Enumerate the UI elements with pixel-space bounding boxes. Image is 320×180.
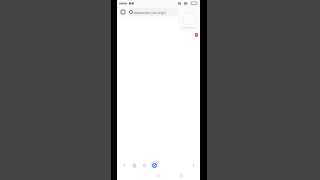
button[interactable]: Bookmark xyxy=(140,161,148,169)
button[interactable]: Home navigation xyxy=(155,172,162,179)
button[interactable]: Tab switcher xyxy=(119,8,126,15)
button[interactable]: Popup overlay xyxy=(178,9,200,33)
button[interactable]: Active tool xyxy=(150,161,158,169)
button[interactable]: Back xyxy=(120,161,128,169)
button[interactable]: Account xyxy=(185,8,192,15)
button[interactable]: awesome.icsi.org/t xyxy=(127,8,184,16)
button[interactable]: Home xyxy=(130,161,138,169)
button[interactable]: Back navigation xyxy=(133,172,140,179)
staticText: awesome.icsi.org/t xyxy=(134,10,182,15)
button[interactable]: Recent apps xyxy=(178,172,185,179)
button[interactable]: More options xyxy=(192,9,198,15)
button[interactable]: Menu xyxy=(189,161,197,169)
